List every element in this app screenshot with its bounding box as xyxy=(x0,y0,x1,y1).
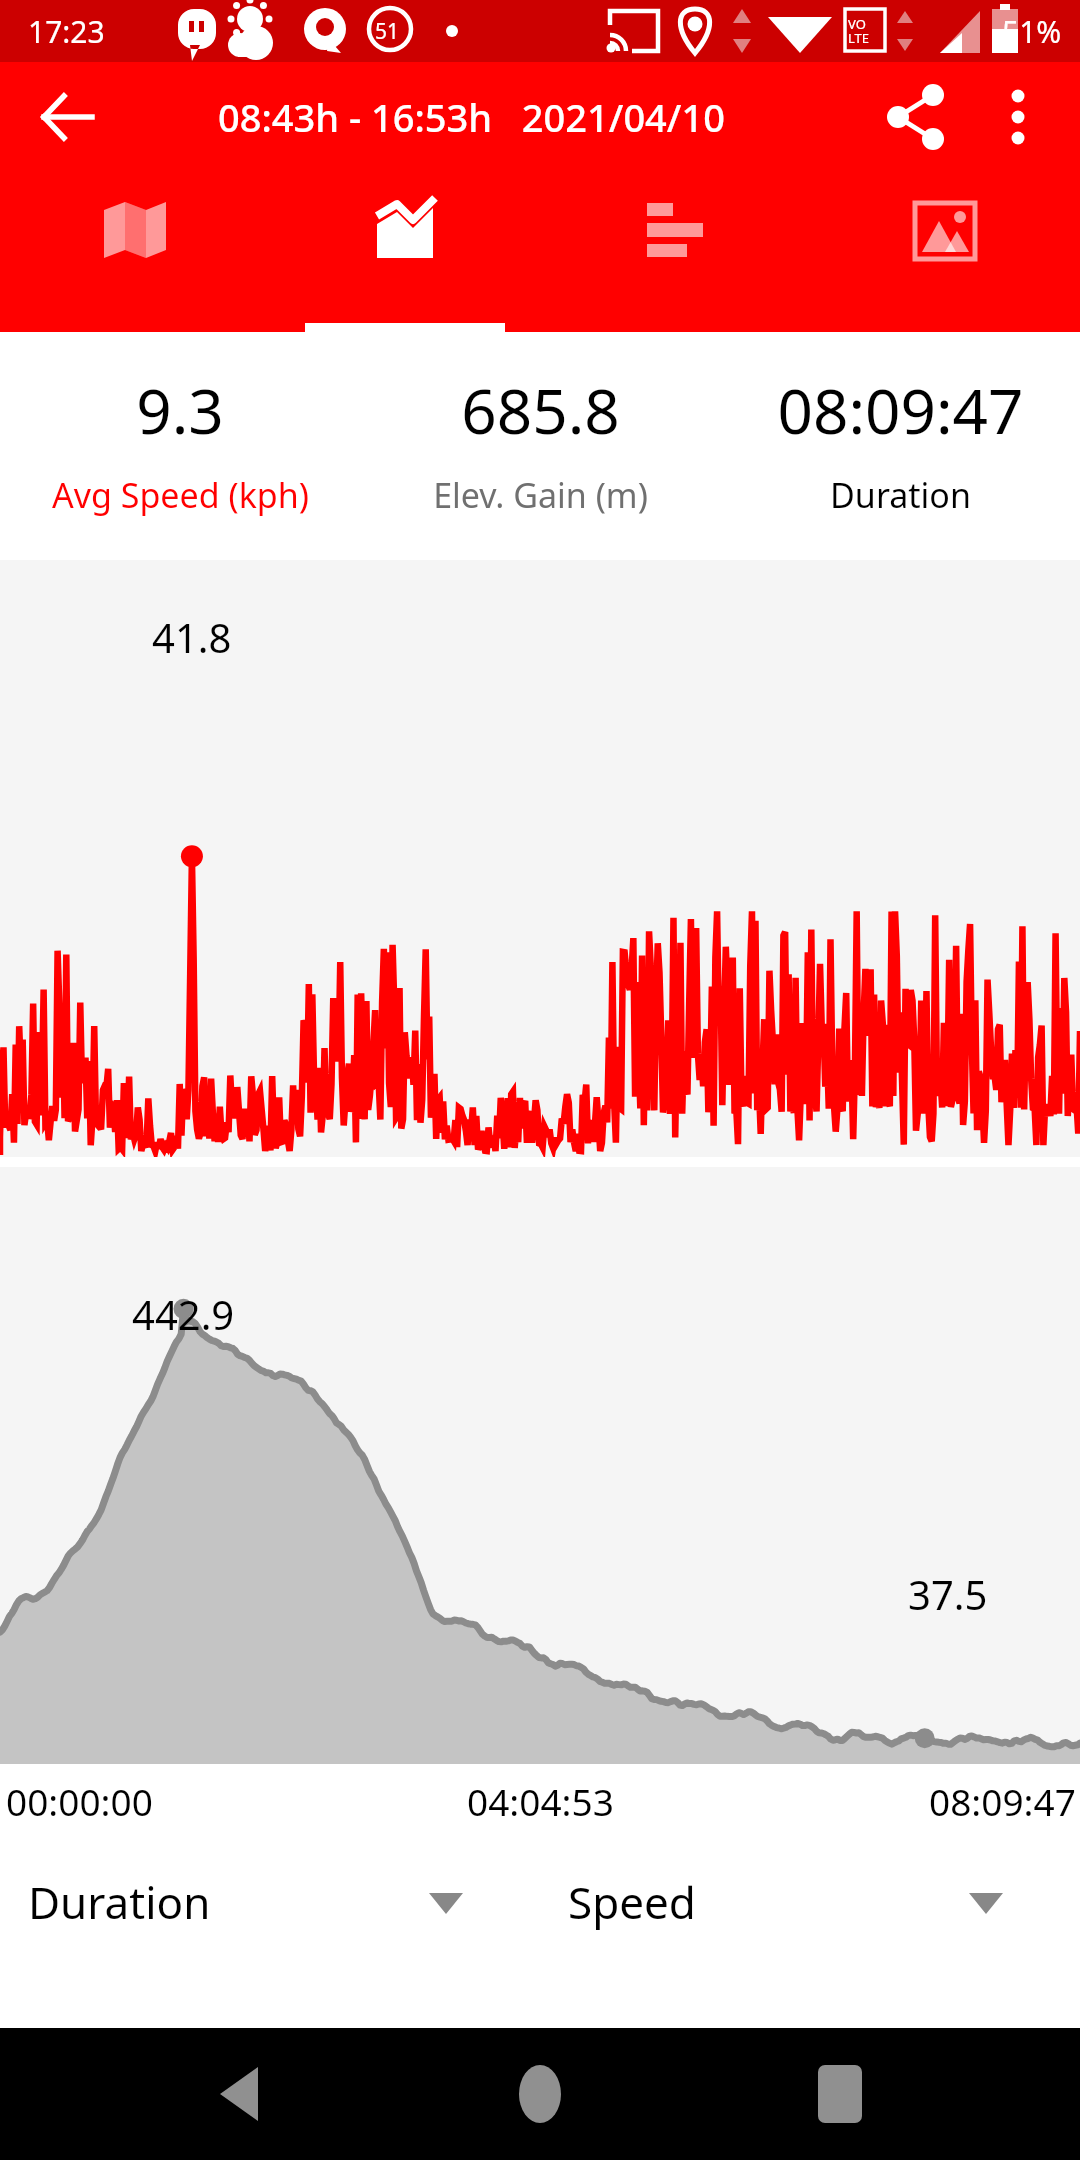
staticText: 08:09:47 xyxy=(777,368,1024,452)
staticText: 51% xyxy=(1002,11,1062,52)
staticText: 04:04:53 xyxy=(467,1776,614,1826)
staticText: Duration xyxy=(28,1872,211,1932)
staticText: 51 xyxy=(375,17,400,46)
button[interactable]: Back xyxy=(180,2034,300,2154)
button[interactable]: Photos xyxy=(810,172,1080,332)
button[interactable]: Share xyxy=(874,75,958,159)
staticText: 442.9 xyxy=(132,1287,235,1341)
staticText: Duration xyxy=(830,472,971,518)
staticText: 9.3 xyxy=(136,368,224,452)
button[interactable]: Speed xyxy=(540,1838,1080,1966)
staticText: 08:43h - 16:53h 2021/04/10 xyxy=(218,91,725,143)
staticText: 08:09:47 xyxy=(929,1776,1076,1826)
button[interactable]: More options xyxy=(976,75,1060,159)
button[interactable]: Duration xyxy=(0,1838,540,1966)
button[interactable]: Splits xyxy=(540,172,810,332)
staticText: 41.8 xyxy=(152,610,232,664)
staticText: 17:23 xyxy=(28,11,105,52)
staticText: 37.5 xyxy=(908,1567,988,1621)
button[interactable]: Back xyxy=(30,79,106,155)
button[interactable]: Charts xyxy=(270,172,540,332)
button[interactable]: Map xyxy=(0,172,270,332)
staticText: 00:00:00 xyxy=(6,1776,153,1826)
staticText: VO LTE xyxy=(848,15,870,47)
staticText: Speed xyxy=(568,1872,696,1932)
staticText: 685.8 xyxy=(461,368,620,452)
staticText: Elev. Gain (m) xyxy=(433,472,648,518)
button[interactable]: 9.3 xyxy=(0,332,360,560)
button[interactable]: 685.8 xyxy=(360,332,720,560)
button[interactable]: 08:09:47 xyxy=(720,332,1080,560)
button[interactable]: Recent apps xyxy=(780,2034,900,2154)
button[interactable]: Home xyxy=(480,2034,600,2154)
staticText: Avg Speed (kph) xyxy=(52,472,309,518)
